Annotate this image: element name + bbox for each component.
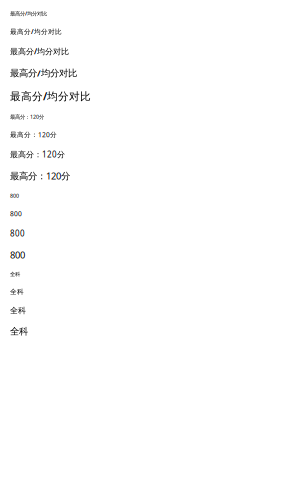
staticText: 最高分/均分对比 (10, 67, 77, 79)
staticText: 最高分：120分 (10, 130, 57, 139)
staticText: 最高分：120分 (10, 113, 44, 120)
staticText: 最高分/均分对比 (10, 46, 69, 56)
staticText: 800 (10, 192, 19, 199)
staticText: 800 (10, 228, 25, 239)
staticText: 全科 (10, 326, 28, 337)
staticText: 最高分/均分对比 (10, 10, 47, 17)
staticText: 最高分：120分 (10, 170, 70, 182)
staticText: 800 (10, 249, 25, 261)
staticText: 最高分/均分对比 (10, 89, 91, 103)
staticText: 800 (10, 209, 22, 218)
staticText: 全科 (10, 288, 24, 296)
staticText: 最高分/均分对比 (10, 27, 62, 36)
staticText: 全科 (10, 271, 20, 278)
staticText: 全科 (10, 306, 26, 316)
staticText: 最高分：120分 (10, 149, 65, 160)
